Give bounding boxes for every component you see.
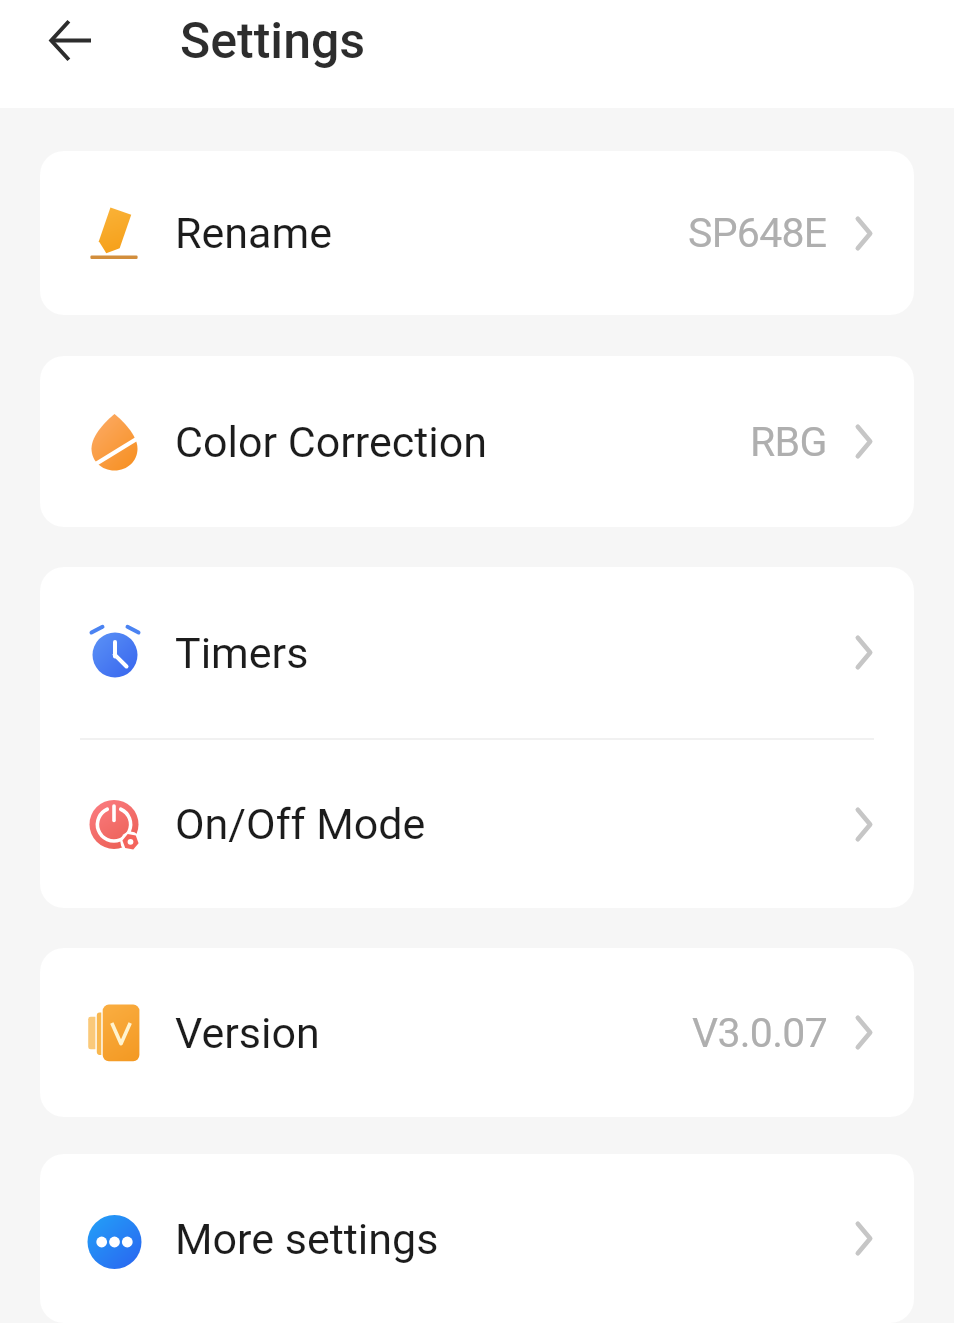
button[interactable]: Rename	[40, 151, 914, 315]
button[interactable]: Color Correction	[40, 356, 914, 527]
button[interactable]: On/Off Mode	[40, 740, 914, 908]
button[interactable]: Back	[30, 0, 110, 80]
staticText: Rename	[175, 208, 332, 258]
button[interactable]: Version	[40, 948, 914, 1117]
staticText: SP648E	[688, 209, 827, 257]
staticText: Settings	[180, 12, 366, 71]
button[interactable]: More settings	[40, 1154, 914, 1323]
staticText: Version	[175, 1008, 320, 1058]
staticText: More settings	[175, 1214, 439, 1264]
staticText: Color Correction	[175, 417, 488, 467]
staticText: On/Off Mode	[175, 799, 426, 849]
staticText: RBG	[750, 418, 827, 466]
staticText: Timers	[175, 628, 309, 678]
staticText: V3.0.07	[692, 1009, 827, 1057]
button[interactable]: Timers	[40, 567, 914, 738]
